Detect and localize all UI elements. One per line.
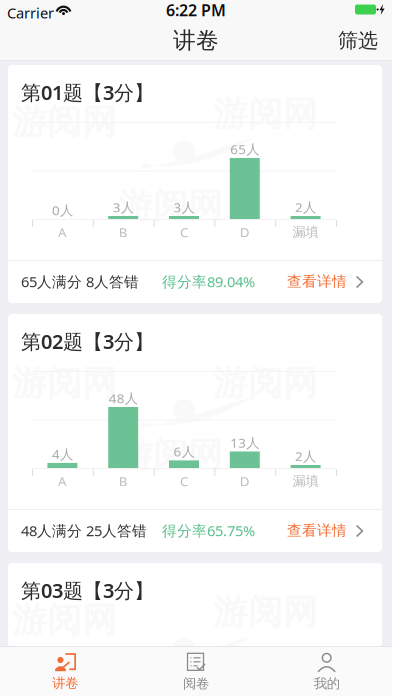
staticText: 游阅网 <box>118 683 223 696</box>
staticText: 讲卷 <box>52 675 78 691</box>
staticText: 48人满分 25人答错 <box>21 521 147 540</box>
staticText: 4人 <box>52 445 73 463</box>
staticText: Carrier <box>7 3 54 22</box>
staticText: 2人 <box>295 198 316 216</box>
staticText: 查看详情 <box>287 521 347 539</box>
staticText: 漏填 <box>293 224 319 240</box>
staticText: 3人 <box>113 198 134 216</box>
staticText: A <box>58 472 67 490</box>
staticText: 游阅网 <box>12 362 117 405</box>
staticText: 3人 <box>173 198 194 216</box>
staticText: 我的 <box>314 675 340 692</box>
staticText: 得分率89.04% <box>162 272 255 291</box>
staticText: 第02题【3分】 <box>21 328 154 355</box>
staticText: 游阅网 <box>12 101 117 144</box>
staticText: 游阅网 <box>118 185 223 228</box>
staticText: 2人 <box>295 447 316 465</box>
staticText: B <box>119 223 128 241</box>
staticText: B <box>119 472 128 490</box>
staticText: 阅卷 <box>183 675 209 692</box>
staticText: 6:22 PM <box>166 0 226 21</box>
staticText: 0人 <box>52 201 73 219</box>
staticText: 查看详情 <box>287 272 347 290</box>
staticText: 漏填 <box>293 473 319 489</box>
button[interactable]: 阅卷 <box>131 651 261 693</box>
staticText: 第01题【3分】 <box>21 79 154 106</box>
staticText: 第03题【3分】 <box>21 577 154 604</box>
staticText: 13人 <box>230 434 259 451</box>
staticText: D <box>240 223 250 241</box>
staticText: A <box>58 223 67 241</box>
button[interactable]: 我的 <box>261 651 392 693</box>
staticText: 游阅网 <box>118 434 223 477</box>
staticText: 48人 <box>109 389 138 407</box>
staticText: 得分率65.75% <box>162 521 255 540</box>
button[interactable]: 48人满分 25人答错 <box>8 509 382 552</box>
staticText: C <box>180 472 188 490</box>
staticText: C <box>180 223 188 241</box>
button[interactable]: 65人满分 8人答错 <box>8 260 382 303</box>
staticText: 6人 <box>173 442 194 460</box>
staticText: 筛选 <box>338 28 378 53</box>
staticText: 65人 <box>230 140 259 158</box>
staticText: 65人满分 8人答错 <box>21 272 139 291</box>
staticText: 讲卷 <box>173 27 219 54</box>
button[interactable]: 筛选 <box>324 18 392 63</box>
staticText: D <box>240 472 250 490</box>
button[interactable]: 讲卷 <box>0 651 131 693</box>
staticText: 游阅网 <box>12 599 117 642</box>
